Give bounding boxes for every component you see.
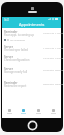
button[interactable]: Events xyxy=(16,101,31,118)
staticText: Reminder xyxy=(4,81,18,85)
button[interactable]: Reminder xyxy=(2,80,61,89)
staticText: 12:15 PM xyxy=(43,56,54,59)
staticText: 10:30 AM xyxy=(43,31,54,34)
staticText: 11:00 AM xyxy=(43,46,54,49)
staticText: Your appt. is coming up xyxy=(4,33,34,37)
staticText: My Schedule xyxy=(10,38,25,41)
button[interactable]: More xyxy=(46,101,61,118)
button[interactable]: Server xyxy=(2,66,61,76)
staticText: 9:41 xyxy=(4,18,10,22)
staticText: Server xyxy=(4,67,13,71)
button[interactable]: Appointments xyxy=(2,21,61,28)
staticText: Server xyxy=(4,55,13,59)
staticText: 11:00 AM xyxy=(55,31,63,34)
button[interactable]: Reminder xyxy=(2,29,61,43)
button[interactable]: Alerts xyxy=(31,101,46,118)
staticText: Storage nearly full xyxy=(4,70,28,74)
staticText: Review the report xyxy=(4,84,27,88)
staticText: 02:00 PM xyxy=(55,68,63,71)
staticText: Appointments xyxy=(19,22,45,27)
button[interactable]: Server xyxy=(2,44,61,53)
staticText: 01:30 PM xyxy=(43,68,54,71)
staticText: 03:00 PM xyxy=(43,82,54,85)
staticText: Reminder xyxy=(4,30,18,34)
staticText: 12:45 PM xyxy=(55,56,63,59)
button[interactable]: Server xyxy=(2,54,61,64)
staticText: 11:30 AM xyxy=(55,46,63,49)
staticText: Server xyxy=(4,45,13,49)
staticText: The last sync failed xyxy=(4,48,28,52)
staticText: 03:30 PM xyxy=(55,82,63,85)
staticText: Check configuration xyxy=(4,58,30,62)
button[interactable]: Home xyxy=(2,101,16,118)
